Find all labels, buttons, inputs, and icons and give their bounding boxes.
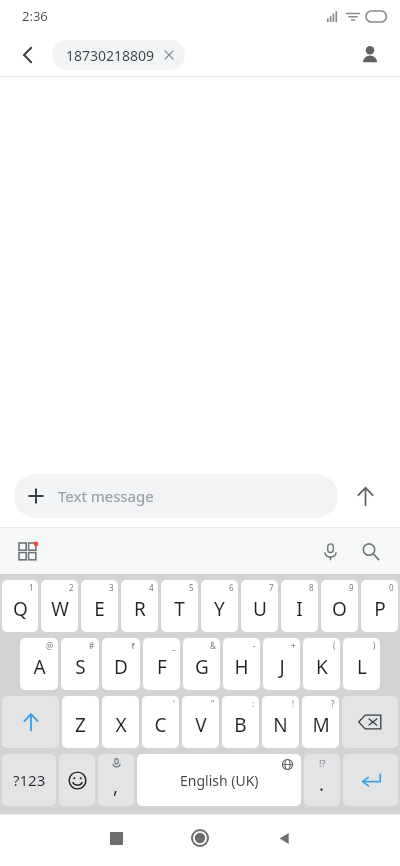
staticText: !? <box>319 757 326 769</box>
staticText: ? <box>331 698 335 709</box>
staticText: , <box>113 773 119 799</box>
staticText: English (UK) <box>180 771 259 790</box>
staticText: ( <box>333 640 336 651</box>
button[interactable]: " <box>182 696 219 748</box>
button[interactable]: Apps <box>8 531 48 571</box>
button[interactable]: 18730218809 <box>52 40 185 70</box>
staticText: A <box>33 654 46 680</box>
staticText: H <box>234 654 249 680</box>
staticText: 3 <box>109 582 114 593</box>
staticText: D <box>114 654 128 680</box>
staticText: + <box>291 640 296 651</box>
button[interactable]: Emoji <box>59 754 95 806</box>
button[interactable]: Z <box>62 696 99 748</box>
button[interactable]: ?123 <box>2 754 56 806</box>
button[interactable]: + <box>263 638 300 690</box>
staticText: 1 <box>29 582 34 593</box>
button[interactable]: @ <box>20 638 58 690</box>
button[interactable]: ! <box>262 696 299 748</box>
button[interactable]: 5 <box>161 580 198 632</box>
button[interactable]: Home <box>158 814 242 862</box>
button[interactable]: Search <box>350 531 390 571</box>
staticText: I <box>296 596 303 622</box>
button[interactable]: 7 <box>241 580 278 632</box>
staticText: 8 <box>309 582 314 593</box>
staticText: V <box>195 712 207 738</box>
button[interactable]: 9 <box>321 580 358 632</box>
staticText: 5 <box>189 582 194 593</box>
staticText: L <box>357 654 367 680</box>
staticText: 2:36 <box>22 7 48 25</box>
staticText: T <box>174 596 185 622</box>
button[interactable]: : <box>222 696 259 748</box>
staticText: Z <box>75 712 86 738</box>
staticText: E <box>94 596 105 622</box>
button[interactable]: ( <box>303 638 340 690</box>
staticText: S <box>75 654 86 680</box>
button[interactable]: 8 <box>281 580 318 632</box>
staticText: F <box>157 654 167 680</box>
button[interactable]: Back <box>8 35 48 75</box>
button[interactable]: Comma and voice <box>98 754 134 806</box>
button[interactable]: X <box>102 696 139 748</box>
staticText: ?123 <box>13 770 46 790</box>
staticText: ' <box>173 698 175 709</box>
staticText: J <box>279 654 285 680</box>
button[interactable]: ) <box>343 638 380 690</box>
button[interactable]: Recents <box>74 814 158 862</box>
staticText: K <box>316 654 328 680</box>
staticText: ! <box>292 698 295 709</box>
staticText: Q <box>13 596 28 622</box>
staticText: " <box>211 698 215 709</box>
staticText: 0 <box>389 582 394 593</box>
staticText: 6 <box>229 582 234 593</box>
button[interactable]: Text message <box>14 474 338 518</box>
button[interactable]: Send <box>344 475 386 517</box>
button[interactable]: ₹ <box>102 638 140 690</box>
staticText: & <box>210 640 216 651</box>
staticText: C <box>154 712 167 738</box>
button[interactable]: 3 <box>81 580 118 632</box>
staticText: ₹ <box>131 640 136 651</box>
staticText: M <box>312 712 330 738</box>
button[interactable]: ' <box>142 696 179 748</box>
button[interactable]: 1 <box>2 580 38 632</box>
button[interactable]: 6 <box>201 580 238 632</box>
staticText: Text message <box>58 486 154 506</box>
staticText: U <box>253 596 267 622</box>
staticText: _ <box>172 640 176 651</box>
staticText: P <box>374 596 386 622</box>
staticText: O <box>332 596 347 622</box>
button[interactable]: - <box>223 638 260 690</box>
button[interactable]: Contact <box>350 35 390 75</box>
staticText: 2 <box>69 582 74 593</box>
button[interactable]: 2 <box>41 580 78 632</box>
staticText: Y <box>214 596 225 622</box>
button[interactable]: Space, English (UK) <box>137 754 301 806</box>
staticText: @ <box>46 640 54 651</box>
staticText: W <box>51 596 69 622</box>
button[interactable]: Voice input <box>310 531 350 571</box>
button[interactable]: !? <box>304 754 340 806</box>
staticText: : <box>252 698 255 709</box>
button[interactable]: # <box>61 638 99 690</box>
button[interactable]: Shift <box>2 696 59 748</box>
button[interactable]: & <box>183 638 220 690</box>
staticText: 18730218809 <box>66 46 155 65</box>
staticText: - <box>253 640 256 651</box>
staticText: G <box>195 654 209 680</box>
staticText: 7 <box>269 582 274 593</box>
staticText: # <box>89 640 95 651</box>
button[interactable]: Back <box>242 814 326 862</box>
button[interactable]: Enter <box>343 754 398 806</box>
button[interactable]: 4 <box>121 580 158 632</box>
staticText: N <box>273 712 288 738</box>
button[interactable]: 0 <box>361 580 398 632</box>
staticText: ) <box>373 640 376 651</box>
staticText: 9 <box>349 582 354 593</box>
staticText: . <box>319 771 325 797</box>
button[interactable]: Backspace <box>342 696 398 748</box>
staticText: B <box>234 712 247 738</box>
button[interactable]: _ <box>143 638 180 690</box>
button[interactable]: ? <box>302 696 339 748</box>
